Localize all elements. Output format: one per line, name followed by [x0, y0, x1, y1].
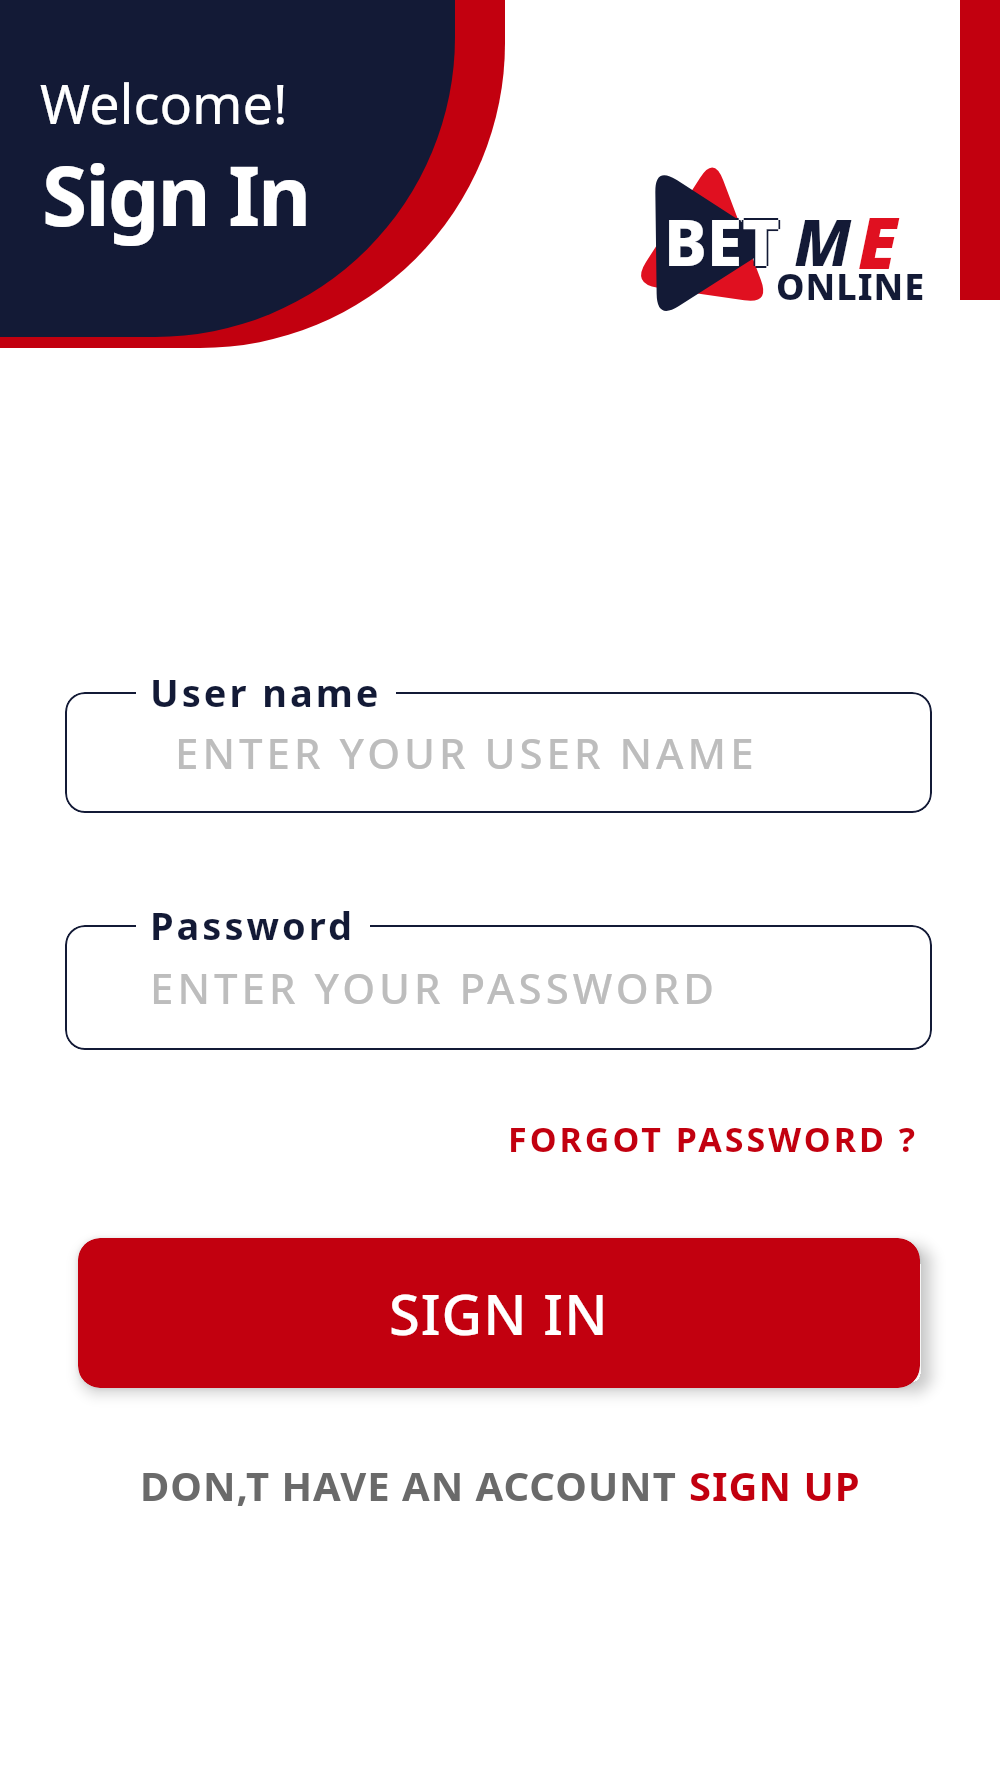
staticText: Sign In — [42, 138, 310, 250]
staticText: ENTER YOUR PASSWORD — [150, 959, 719, 1016]
button[interactable]: ENTER YOUR PASSWORD — [65, 925, 932, 1050]
staticText: ONLINE — [776, 262, 926, 311]
staticText: ENTER YOUR USER NAME — [175, 724, 758, 781]
button[interactable]: ENTER YOUR USER NAME — [65, 692, 932, 813]
staticText: BET — [664, 198, 780, 285]
staticText: BET — [666, 198, 782, 285]
button[interactable]: SIGN UP — [689, 1458, 861, 1512]
staticText: User name — [150, 666, 382, 718]
staticText: Password — [150, 899, 356, 951]
staticText: SIGN IN — [389, 1275, 609, 1351]
staticText: BET — [664, 200, 780, 287]
staticText: Welcome! — [40, 66, 288, 140]
button[interactable]: SIGN IN — [78, 1238, 920, 1388]
staticText: DON,T HAVE AN ACCOUNT — [140, 1458, 689, 1512]
staticText: BET — [662, 198, 778, 285]
staticText: M — [794, 198, 852, 285]
staticText: BET — [664, 196, 780, 283]
staticText: E — [858, 194, 898, 289]
